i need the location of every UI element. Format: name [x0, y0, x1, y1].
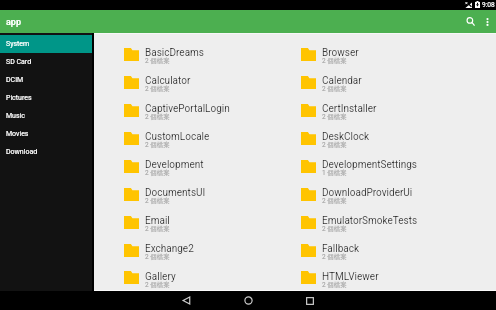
button[interactable]: SD Card — [0, 53, 92, 71]
staticText: Movies — [6, 130, 29, 138]
button[interactable]: Calculator — [110, 68, 287, 96]
staticText: Download — [6, 148, 38, 156]
staticText: DownloadProviderUi — [322, 187, 413, 199]
button[interactable]: DownloadProviderUi — [287, 180, 464, 208]
staticText: 9:08 — [482, 1, 495, 9]
button[interactable]: Exchange2 — [110, 236, 287, 264]
staticText: 2 個檔案 — [145, 57, 170, 65]
staticText: 2 個檔案 — [145, 281, 170, 289]
staticText: 1 個檔案 — [322, 169, 347, 177]
staticText: Browser — [322, 47, 359, 59]
staticText: Development — [145, 159, 204, 171]
button[interactable]: EmulatorSmokeTests — [287, 208, 464, 236]
staticText: 2 個檔案 — [322, 85, 347, 93]
button[interactable]: Back — [155, 291, 217, 310]
staticText: 2 個檔案 — [322, 281, 347, 289]
staticText: HTMLViewer — [322, 271, 379, 283]
staticText: Gallery — [145, 271, 176, 283]
button[interactable]: DeskClock — [287, 124, 464, 152]
staticText: EmulatorSmokeTests — [322, 215, 418, 227]
button[interactable]: Fallback — [287, 236, 464, 264]
staticText: System — [6, 40, 30, 48]
staticText: Exchange2 — [145, 243, 194, 255]
staticText: DCIM — [6, 76, 24, 84]
button[interactable]: Pictures — [0, 89, 92, 107]
staticText: 2 個檔案 — [322, 225, 347, 233]
button[interactable]: HTMLViewer — [287, 264, 464, 291]
button[interactable]: Music — [0, 107, 92, 125]
staticText: DeskClock — [322, 131, 370, 143]
staticText: SD Card — [6, 58, 32, 66]
staticText: 2 個檔案 — [145, 197, 170, 205]
button[interactable]: Movies — [0, 125, 92, 143]
button[interactable]: System — [0, 35, 92, 53]
button[interactable]: Email — [110, 208, 287, 236]
staticText: 2 個檔案 — [322, 253, 347, 261]
staticText: 2 個檔案 — [145, 225, 170, 233]
button[interactable]: CustomLocale — [110, 124, 287, 152]
staticText: 2 個檔案 — [145, 141, 170, 149]
staticText: Email — [145, 215, 170, 227]
staticText: Fallback — [322, 243, 360, 255]
button[interactable]: DCIM — [0, 71, 92, 89]
button[interactable]: Calendar — [287, 68, 464, 96]
button[interactable]: CaptivePortalLogin — [110, 96, 287, 124]
staticText: 2 個檔案 — [322, 113, 347, 121]
staticText: 2 個檔案 — [322, 141, 347, 149]
staticText: CertInstaller — [322, 103, 377, 115]
button[interactable]: DocumentsUI — [110, 180, 287, 208]
staticText: CaptivePortalLogin — [145, 103, 230, 115]
staticText: 2 個檔案 — [145, 85, 170, 93]
staticText: 2 個檔案 — [145, 169, 170, 177]
staticText: DevelopmentSettings — [322, 159, 418, 171]
staticText: Music — [6, 112, 25, 120]
button[interactable]: Home — [217, 291, 279, 310]
staticText: BasicDreams — [145, 47, 205, 59]
staticText: Calculator — [145, 75, 191, 87]
button[interactable]: Development — [110, 152, 287, 180]
staticText: CustomLocale — [145, 131, 210, 143]
staticText: 2 個檔案 — [322, 57, 347, 65]
staticText: 2 個檔案 — [322, 197, 347, 205]
button[interactable]: Recents — [279, 291, 341, 310]
button[interactable]: DevelopmentSettings — [287, 152, 464, 180]
staticText: Pictures — [6, 94, 32, 102]
button[interactable]: CertInstaller — [287, 96, 464, 124]
button[interactable]: Search — [460, 10, 480, 33]
button[interactable]: Download — [0, 143, 92, 161]
staticText: Calendar — [322, 75, 362, 87]
staticText: app — [6, 17, 21, 28]
staticText: DocumentsUI — [145, 187, 206, 199]
button[interactable]: Browser — [287, 40, 464, 68]
staticText: 2 個檔案 — [145, 253, 170, 261]
staticText: 2 個檔案 — [145, 113, 170, 121]
button[interactable]: BasicDreams — [110, 40, 287, 68]
button[interactable]: More options — [480, 10, 495, 33]
button[interactable]: Gallery — [110, 264, 287, 291]
